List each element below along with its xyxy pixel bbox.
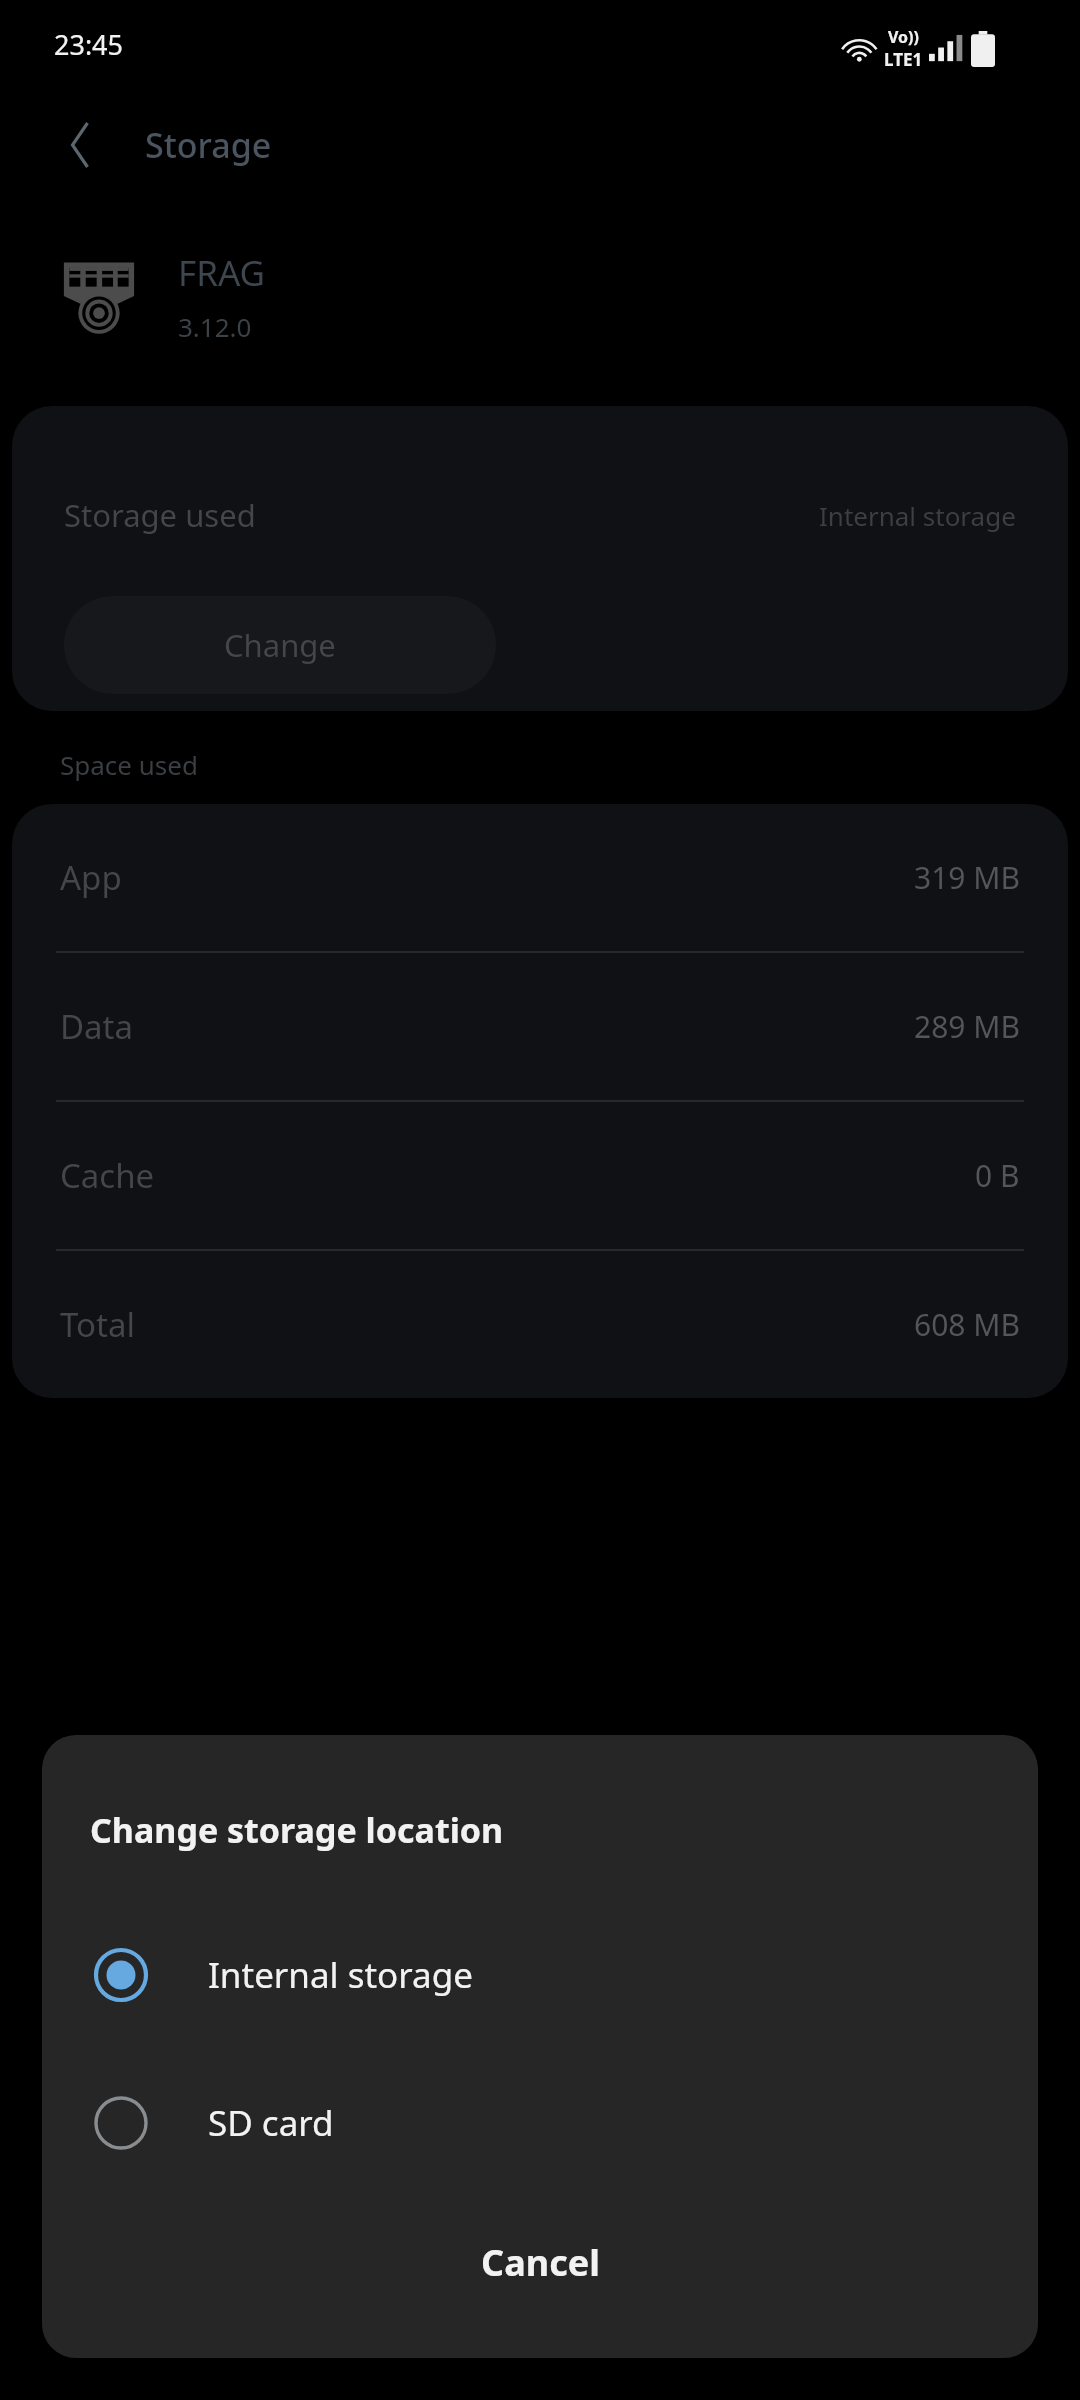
staticText: Storage — [145, 122, 272, 168]
staticText: LTE1 — [884, 48, 923, 71]
staticText: 23:45 — [54, 26, 124, 63]
staticText: Internal storage — [819, 498, 1016, 533]
button[interactable]: Change — [64, 596, 496, 694]
staticText: Vo)) — [888, 26, 919, 48]
button[interactable]: Back — [40, 105, 120, 185]
staticText: Cache — [60, 1153, 155, 1198]
staticText: 3.12.0 — [178, 309, 252, 344]
button[interactable]: Data — [12, 953, 1068, 1100]
staticText: FRAG — [178, 249, 266, 297]
staticText: App — [60, 855, 122, 900]
staticText: Space used — [60, 747, 198, 782]
staticText: 0 B — [975, 1155, 1020, 1196]
staticText: Cancel — [481, 2238, 600, 2287]
button[interactable]: Clear cache — [540, 2250, 1080, 2400]
staticText: Total — [60, 1302, 135, 1347]
button[interactable]: Internal storage — [42, 1901, 1038, 2049]
staticText: 608 MB — [914, 1304, 1020, 1345]
staticText: Storage used — [64, 494, 256, 536]
staticText: 319 MB — [914, 857, 1020, 898]
staticText: 289 MB — [914, 1006, 1020, 1047]
staticText: Change — [224, 624, 336, 666]
button[interactable]: Total — [12, 1251, 1068, 1398]
button[interactable]: Clear data — [0, 2250, 540, 2400]
button[interactable]: App — [12, 804, 1068, 951]
staticText: Internal storage — [208, 1951, 473, 1999]
button[interactable]: SD card — [42, 2049, 1038, 2197]
staticText: SD card — [208, 2099, 334, 2147]
staticText: Data — [60, 1004, 134, 1049]
button[interactable]: Cache — [12, 1102, 1068, 1249]
button[interactable]: Cancel — [42, 2207, 1038, 2317]
staticText: Change storage location — [90, 1807, 504, 1853]
